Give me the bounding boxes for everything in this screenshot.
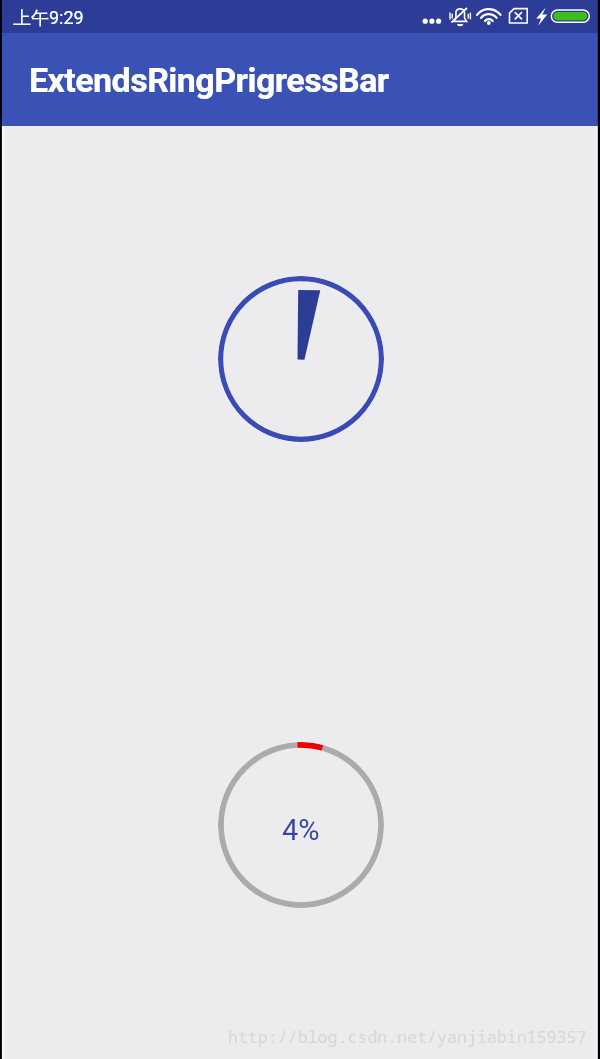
staticText: http://blog.csdn.net/yanjiabin159357 [228,1025,587,1048]
staticText: ExtendsRingPrigressBar [29,60,389,100]
button[interactable]: 4% [218,742,384,908]
other: Notifications, silent mode, Wi-Fi, no SI… [0,0,600,33]
button[interactable]: Ring progress indicator [218,276,384,442]
button[interactable]: ExtendsRingPrigressBar [0,33,600,126]
staticText: 4% [282,813,320,847]
staticText: 上午9:29 [13,7,84,30]
